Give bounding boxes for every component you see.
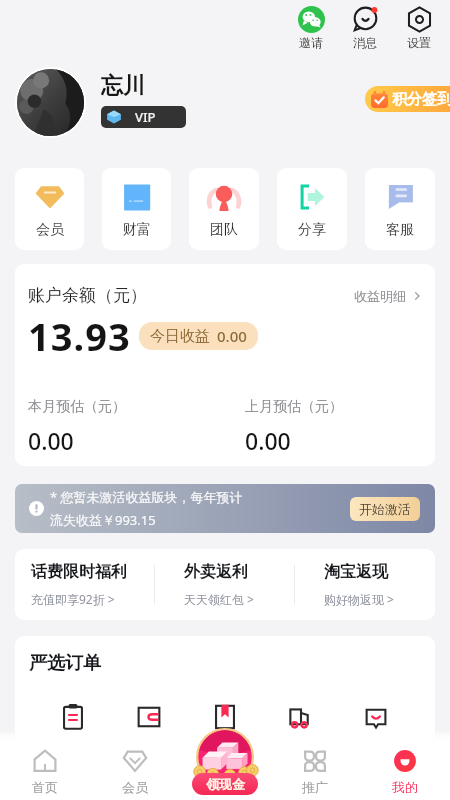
- staticText: 团队: [210, 221, 238, 239]
- staticText: 上月预估（元）: [245, 398, 343, 416]
- staticText: 今日收益: [150, 327, 210, 346]
- staticText: 会员: [122, 779, 148, 795]
- button[interactable]: 邀请: [291, 0, 331, 50]
- button[interactable]: 推广: [270, 741, 360, 800]
- button[interactable]: 设置: [399, 0, 439, 50]
- button[interactable]: 淘宝返现: [295, 549, 435, 620]
- staticText: 流失收益￥993.15: [50, 511, 156, 529]
- button[interactable]: 我的: [360, 741, 450, 800]
- button[interactable]: 全部订单: [36, 703, 110, 752]
- staticText: * 您暂未激活收益版块，每年预计: [50, 488, 243, 506]
- staticText: 推广: [302, 779, 328, 795]
- staticText: 本月预估（元）: [28, 398, 126, 416]
- staticText: 待支付: [131, 737, 167, 752]
- staticText: 积分签到: [392, 90, 450, 109]
- staticText: 0.00: [28, 425, 74, 456]
- staticText: 严选订单: [29, 652, 101, 675]
- button[interactable]: VIP: [101, 106, 186, 128]
- button[interactable]: 头像: [17, 69, 84, 136]
- staticText: 忘川: [101, 72, 145, 100]
- button[interactable]: 客服: [365, 168, 435, 250]
- staticText: 淘宝返现: [324, 562, 388, 582]
- staticText: 开始激活: [359, 501, 411, 517]
- button[interactable]: 团队: [189, 168, 259, 250]
- button[interactable]: 待收货: [188, 703, 262, 752]
- button[interactable]: 财富: [102, 168, 171, 250]
- button[interactable]: 我的评价: [340, 703, 414, 752]
- staticText: 13.93: [28, 310, 131, 362]
- staticText: 分享: [298, 221, 326, 239]
- staticText: 充值即享92折 >: [31, 591, 115, 607]
- staticText: 财富: [123, 221, 151, 239]
- button[interactable]: 话费限时福利: [15, 549, 154, 620]
- staticText: VIP: [135, 108, 156, 126]
- staticText: 话费限时福利: [31, 562, 127, 582]
- button[interactable]: 领现金: [192, 773, 258, 795]
- staticText: 我的评价: [353, 737, 401, 752]
- button[interactable]: 开始激活: [350, 497, 420, 521]
- staticText: 我的: [392, 779, 418, 795]
- button[interactable]: 外卖返利: [155, 549, 294, 620]
- staticText: 会员: [36, 221, 64, 239]
- staticText: 首页: [32, 779, 58, 795]
- button[interactable]: 积分签到: [365, 86, 450, 112]
- staticText: 外卖返利: [184, 562, 248, 582]
- button[interactable]: 会员: [90, 741, 180, 800]
- button[interactable]: 分享: [277, 168, 347, 250]
- staticText: 客服: [386, 221, 414, 239]
- button[interactable]: 首页: [0, 741, 90, 800]
- button[interactable]: 待支付: [112, 703, 186, 752]
- button[interactable]: 待发货: [264, 703, 338, 752]
- staticText: 0.00: [245, 425, 291, 456]
- staticText: 邀请: [299, 35, 323, 50]
- staticText: 设置: [407, 35, 431, 50]
- button[interactable]: 收益明细: [354, 288, 422, 304]
- staticText: 购好物返现 >: [324, 591, 394, 607]
- staticText: 待发货: [283, 737, 319, 752]
- button[interactable]: 会员: [15, 168, 84, 250]
- staticText: 消息: [353, 35, 377, 50]
- staticText: 领现金: [206, 776, 245, 792]
- staticText: 账户余额（元）: [28, 285, 147, 306]
- staticText: 天天领红包 >: [184, 591, 254, 607]
- button[interactable]: 领现金: [192, 728, 258, 787]
- staticText: 待收货: [207, 737, 243, 752]
- button[interactable]: 消息: [345, 0, 385, 50]
- staticText: 收益明细: [354, 288, 406, 304]
- staticText: 0.00: [217, 326, 247, 346]
